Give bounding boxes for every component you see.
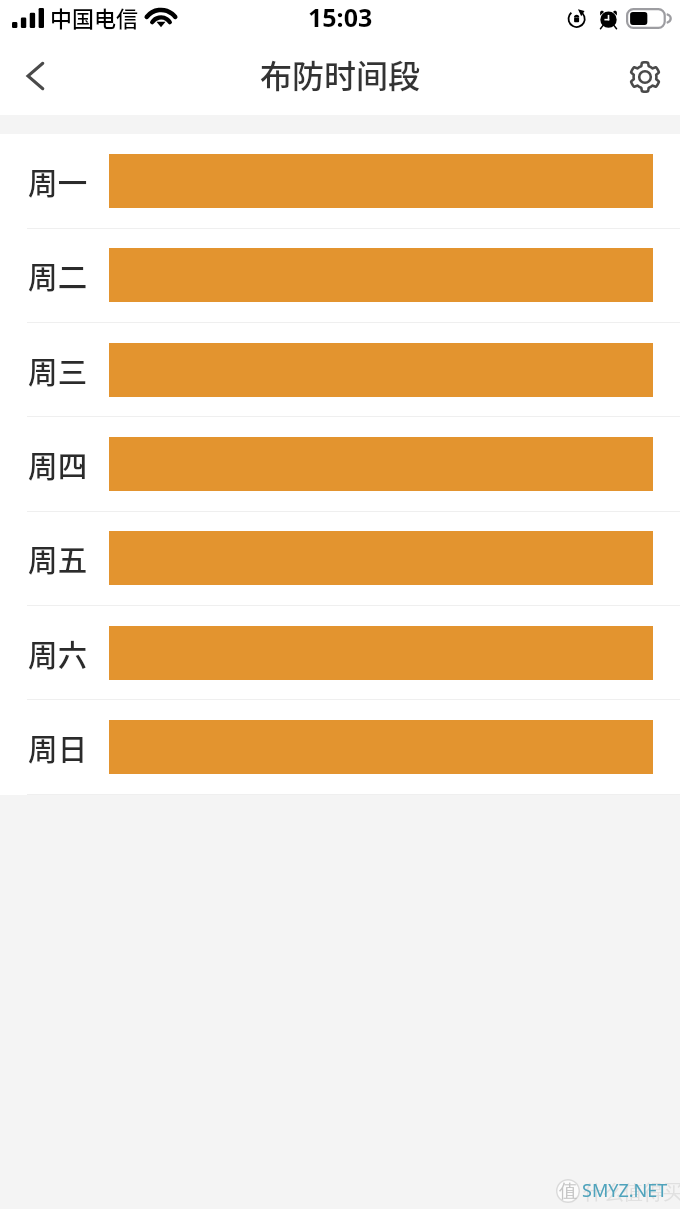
button[interactable]: 周五 xyxy=(0,511,680,605)
staticText: SMYZ.NET xyxy=(582,1178,668,1203)
staticText: 周一 xyxy=(28,160,88,203)
staticText: 周三 xyxy=(28,349,88,392)
staticText: 周日 xyxy=(28,726,88,769)
staticText: 周二 xyxy=(28,254,88,297)
staticText: 周五 xyxy=(28,537,88,580)
staticText: 中国电信 xyxy=(50,1,139,33)
staticText: 值 xyxy=(559,1180,577,1203)
staticText: 周六 xyxy=(28,632,88,675)
button[interactable]: 周日 xyxy=(0,700,680,794)
button[interactable]: Back xyxy=(7,48,63,104)
staticText: 15:03 xyxy=(308,0,373,34)
button[interactable]: 周二 xyxy=(0,228,680,322)
button[interactable]: 周一 xyxy=(0,134,680,228)
staticText: 什么值得买 xyxy=(583,1180,680,1205)
button[interactable]: 周四 xyxy=(0,417,680,511)
staticText: 布防时间段 xyxy=(260,51,421,97)
staticText: 周四 xyxy=(28,443,88,486)
button[interactable]: Settings xyxy=(617,49,673,105)
button[interactable]: 周六 xyxy=(0,606,680,700)
button[interactable]: 周三 xyxy=(0,323,680,417)
